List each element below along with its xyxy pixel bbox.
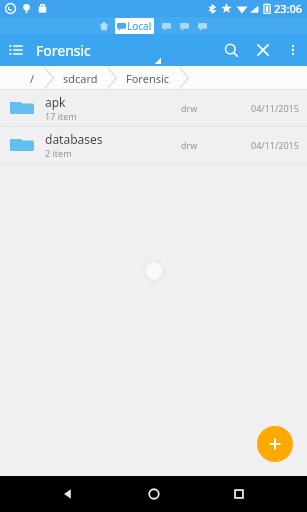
- staticText: Local: [127, 19, 152, 33]
- button[interactable]: Local: [115, 18, 154, 34]
- staticText: 2 item: [45, 147, 72, 159]
- button[interactable]: Add: [257, 426, 293, 462]
- staticText: /: [30, 71, 35, 86]
- staticText: Forensic: [126, 71, 170, 86]
- button[interactable]: Close: [247, 34, 279, 66]
- staticText: apk: [45, 94, 66, 110]
- staticText: Forensic: [36, 41, 91, 60]
- button[interactable]: Secure: [176, 18, 192, 34]
- button[interactable]: Back: [50, 476, 86, 512]
- staticText: drw: [181, 102, 198, 114]
- button[interactable]: Recent apps: [221, 476, 257, 512]
- staticText: drw: [181, 139, 198, 151]
- button[interactable]: Forensic: [118, 68, 178, 89]
- staticText: 23:06: [274, 1, 303, 16]
- button[interactable]: Remote: [194, 18, 210, 34]
- button[interactable]: Menu: [0, 34, 32, 66]
- button[interactable]: databases: [0, 127, 307, 163]
- staticText: 17 item: [45, 110, 77, 122]
- staticText: 04/11/2015: [251, 139, 299, 151]
- staticText: sdcard: [63, 71, 98, 86]
- button[interactable]: /: [22, 68, 43, 89]
- button[interactable]: More options: [279, 36, 307, 64]
- button[interactable]: sdcard: [55, 68, 106, 89]
- button[interactable]: Search: [215, 34, 247, 66]
- staticText: 04/11/2015: [251, 102, 299, 114]
- button[interactable]: apk: [0, 90, 307, 126]
- staticText: databases: [45, 131, 103, 147]
- button[interactable]: Home: [96, 18, 112, 34]
- button[interactable]: Home: [136, 476, 172, 512]
- button[interactable]: Network: [158, 18, 174, 34]
